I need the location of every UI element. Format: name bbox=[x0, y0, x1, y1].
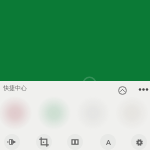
button[interactable]: Quick action bbox=[115, 96, 149, 130]
staticText: A bbox=[106, 137, 111, 147]
button[interactable]: Quick action bbox=[76, 96, 110, 130]
staticText: 快捷中心 bbox=[3, 84, 27, 92]
button[interactable]: Collapse bbox=[114, 82, 130, 98]
button[interactable]: Compare bbox=[67, 134, 83, 150]
button[interactable]: Text bbox=[100, 134, 116, 150]
button[interactable]: Crop bbox=[36, 134, 52, 150]
button[interactable]: Flip bbox=[4, 134, 20, 150]
button[interactable]: More options bbox=[135, 81, 150, 97]
button[interactable]: Quick action bbox=[37, 96, 71, 130]
button[interactable]: Quick action bbox=[0, 96, 32, 130]
button[interactable]: Settings bbox=[131, 134, 147, 150]
